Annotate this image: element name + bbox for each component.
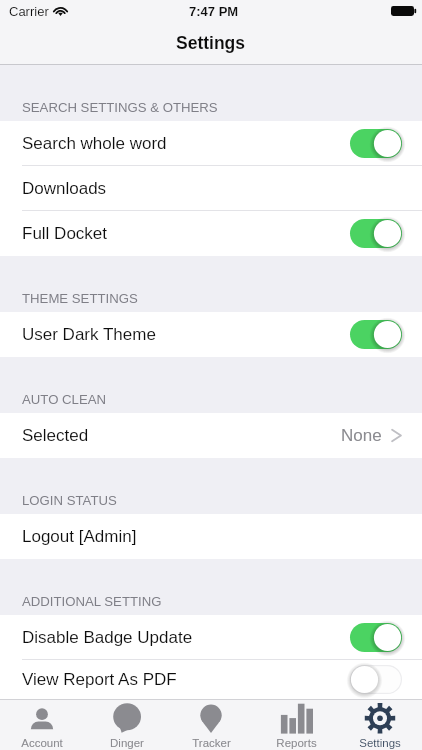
staticText: Settings [359, 737, 401, 750]
staticText: Carrier [9, 4, 49, 19]
button[interactable]: Search whole word [0, 121, 422, 166]
staticText: SEARCH SETTINGS & OTHERS [22, 100, 218, 115]
staticText: AUTO CLEAN [22, 392, 107, 407]
button[interactable]: On [350, 129, 402, 158]
staticText: View Report As PDF [22, 670, 177, 689]
staticText: Downloads [22, 179, 107, 198]
button[interactable]: On [350, 623, 402, 652]
button[interactable]: View Report As PDF [0, 660, 422, 699]
staticText: Reports [276, 737, 317, 750]
staticText: LOGIN STATUS [22, 493, 117, 508]
button[interactable]: Account [0, 699, 84, 750]
button[interactable]: On [350, 320, 402, 349]
staticText: Disable Badge Update [22, 628, 193, 647]
button[interactable]: On [350, 219, 402, 248]
staticText: Tracker [192, 737, 231, 750]
button[interactable]: Full Docket [0, 211, 422, 256]
button[interactable]: Selected [0, 413, 422, 458]
staticText: ADDITIONAL SETTING [22, 594, 162, 609]
button[interactable]: Dinger [85, 699, 169, 750]
staticText: Account [21, 737, 63, 750]
staticText: User Dark Theme [22, 325, 156, 344]
button[interactable]: Settings [338, 699, 422, 750]
staticText: Search whole word [22, 134, 167, 153]
staticText: Selected [22, 426, 89, 445]
button[interactable]: User Dark Theme [0, 312, 422, 357]
staticText: Full Docket [22, 224, 108, 243]
staticText: Dinger [110, 737, 144, 750]
button[interactable]: Off [350, 665, 402, 694]
button[interactable]: Logout [Admin] [0, 514, 422, 559]
button[interactable]: Downloads [0, 166, 422, 211]
staticText: None [341, 426, 382, 445]
button[interactable]: Reports [254, 699, 338, 750]
staticText: 7:47 PM [189, 4, 239, 19]
staticText: THEME SETTINGS [22, 291, 138, 306]
staticText: Logout [Admin] [22, 527, 137, 546]
button[interactable]: Tracker [169, 699, 253, 750]
staticText: Settings [176, 33, 246, 53]
button[interactable]: Disable Badge Update [0, 615, 422, 660]
